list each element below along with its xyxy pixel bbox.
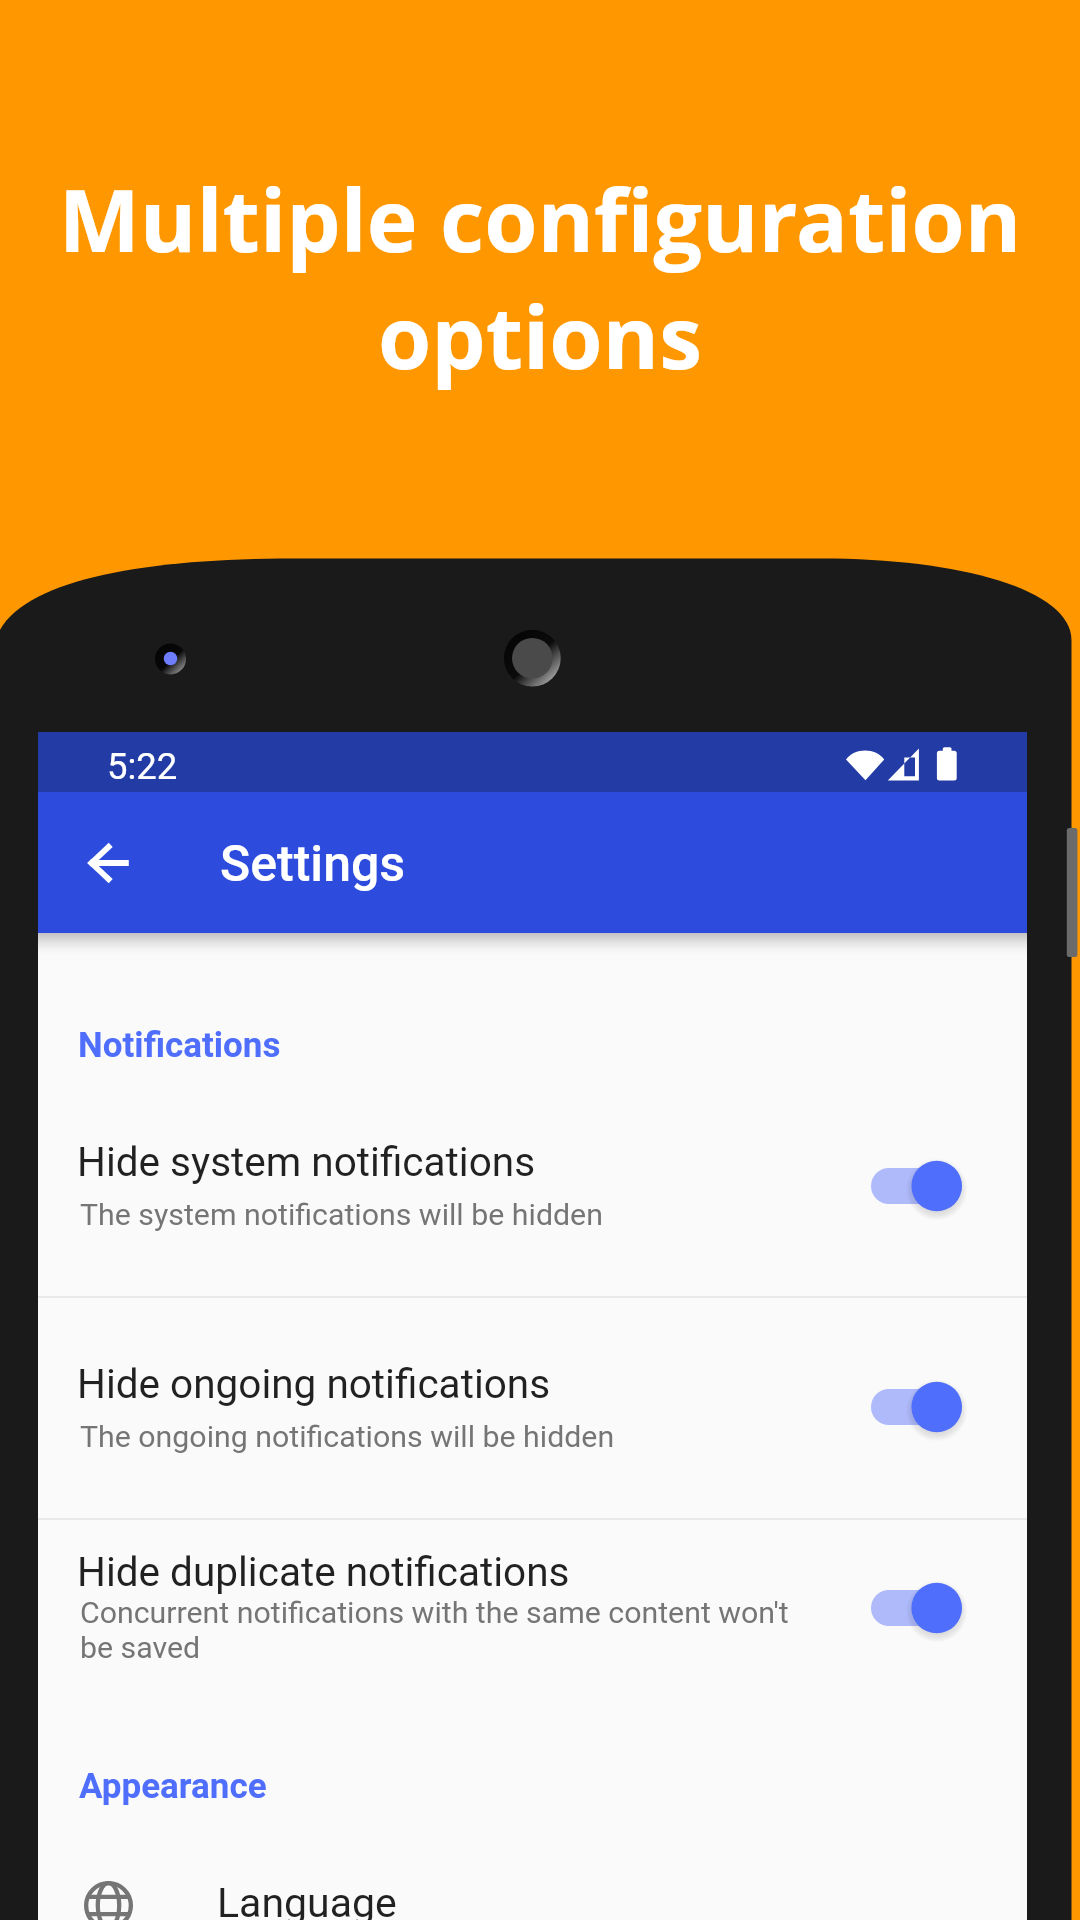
staticText: Concurrent notifications with the same c… [80, 1595, 789, 1631]
button[interactable] [38, 1298, 1027, 1519]
button[interactable]: Toggle switch [862, 1572, 974, 1644]
staticText: be saved [80, 1630, 201, 1666]
staticText: The system notifications will be hidden [80, 1197, 603, 1233]
staticText: Language [217, 1879, 397, 1920]
staticText: The ongoing notifications will be hidden [80, 1419, 615, 1455]
staticText: Hide ongoing notifications [77, 1360, 551, 1407]
button[interactable]: Toggle switch [862, 1371, 974, 1443]
staticText: 5:22 [107, 745, 178, 788]
staticText: Appearance [79, 1766, 267, 1807]
staticText: Hide duplicate notifications [77, 1548, 570, 1595]
staticText: Hide system notifications [77, 1138, 536, 1185]
staticText: Multiple configuration options [28, 160, 1052, 394]
button[interactable] [38, 1520, 1027, 1730]
staticText: Notifications [78, 1025, 281, 1066]
button[interactable]: Toggle switch [862, 1150, 974, 1222]
staticText: Settings [220, 835, 406, 894]
button[interactable] [38, 1846, 1027, 1920]
button[interactable] [38, 1097, 1027, 1296]
button[interactable]: Back [60, 815, 156, 911]
